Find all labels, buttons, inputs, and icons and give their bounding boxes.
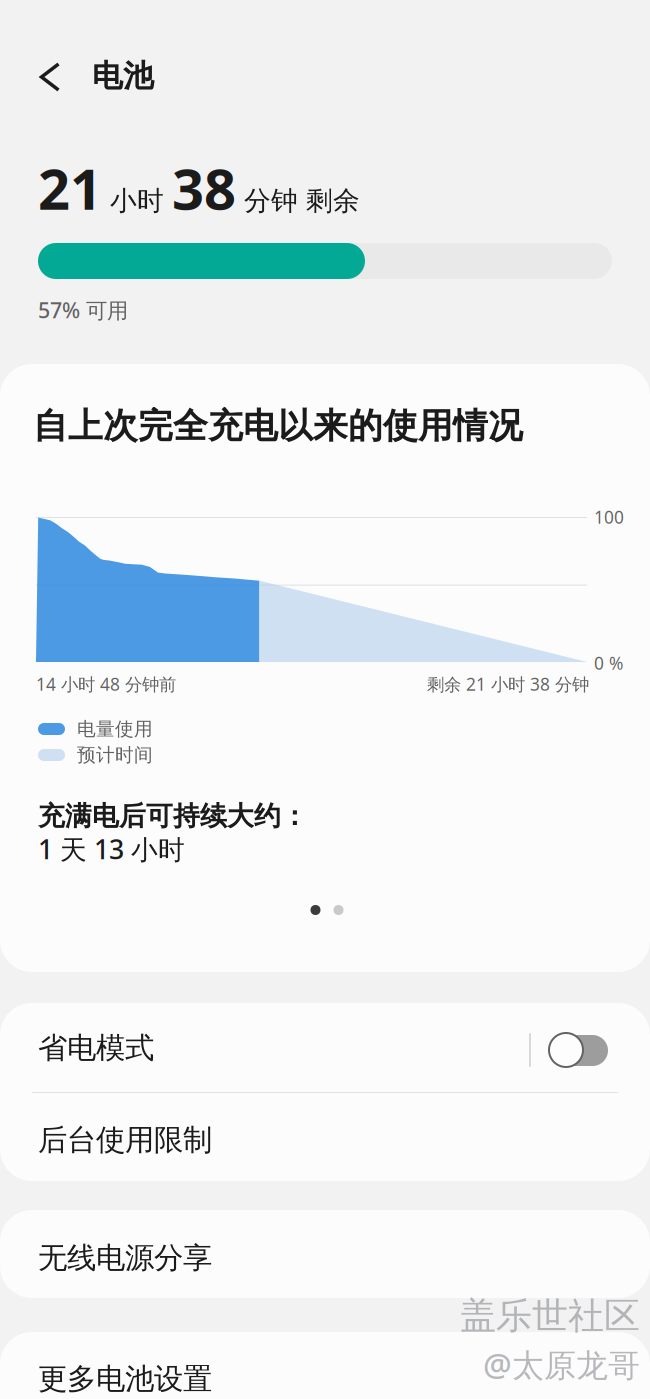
staticText: 小时 [102, 184, 172, 217]
staticText: @太原龙哥 [483, 1343, 640, 1386]
button[interactable]: 后台使用限制 [0, 1092, 650, 1181]
staticText: 0 % [594, 651, 623, 674]
staticText: 21 [38, 151, 102, 225]
staticText: 无线电源分享 [38, 1240, 212, 1276]
staticText: 14 小时 48 分钟前 [36, 672, 176, 695]
staticText: 预计时间 [77, 743, 153, 766]
button[interactable]: Back [18, 45, 82, 109]
staticText: 1 天 13 小时 [38, 831, 185, 867]
button[interactable]: 无线电源分享 [0, 1210, 650, 1298]
staticText: 电池 [92, 57, 154, 95]
staticText: 充满电后可持续大约： [38, 800, 308, 832]
staticText: 57% 可用 [38, 296, 128, 324]
button[interactable]: 电池 [92, 44, 272, 108]
staticText: 100 [594, 505, 624, 528]
staticText: 更多电池设置 [38, 1361, 212, 1397]
staticText: 盖乐世社区 [460, 1294, 640, 1338]
staticText: 自上次完全充电以来的使用情况 [33, 405, 523, 447]
staticText: 电量使用 [77, 717, 153, 740]
staticText: 分钟 剩余 [236, 184, 360, 217]
staticText: 38 [172, 151, 236, 225]
button[interactable]: 省电模式 [0, 1003, 650, 1092]
staticText: 省电模式 [38, 1030, 154, 1066]
button[interactable]: 更多电池设置 [0, 1332, 650, 1399]
staticText: 后台使用限制 [38, 1122, 212, 1158]
staticText: 剩余 21 小时 38 分钟 [427, 672, 589, 695]
